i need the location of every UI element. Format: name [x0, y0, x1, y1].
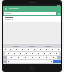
button[interactable] [11, 52, 17, 55]
button[interactable] [36, 56, 43, 59]
button[interactable]: Delete [57, 12, 60, 15]
button[interactable]: Navigate up [4, 7, 8, 11]
button[interactable] [50, 56, 57, 59]
button[interactable] [15, 56, 22, 59]
button[interactable] [41, 52, 47, 55]
button[interactable]: Home [30, 66, 35, 71]
button[interactable] [3, 48, 8, 51]
button[interactable] [19, 48, 25, 51]
button[interactable] [37, 48, 43, 51]
button[interactable] [35, 52, 41, 55]
button[interactable] [4, 12, 56, 15]
button[interactable] [49, 48, 55, 51]
button[interactable] [7, 56, 15, 59]
button[interactable]: Comma [7, 60, 10, 63]
button[interactable]: Period [50, 60, 53, 63]
button[interactable] [29, 56, 36, 59]
button[interactable] [25, 48, 31, 51]
button[interactable] [43, 48, 49, 51]
button[interactable] [13, 48, 19, 51]
button[interactable] [8, 48, 13, 51]
button[interactable] [53, 52, 59, 55]
button[interactable] [17, 52, 23, 55]
button[interactable] [29, 52, 35, 55]
button[interactable] [55, 48, 61, 51]
button[interactable] [22, 56, 29, 59]
button[interactable] [31, 48, 37, 51]
button[interactable] [23, 52, 29, 55]
button[interactable] [43, 56, 50, 59]
button[interactable] [5, 52, 11, 55]
button[interactable] [47, 52, 53, 55]
button[interactable]: Enter [53, 60, 61, 63]
